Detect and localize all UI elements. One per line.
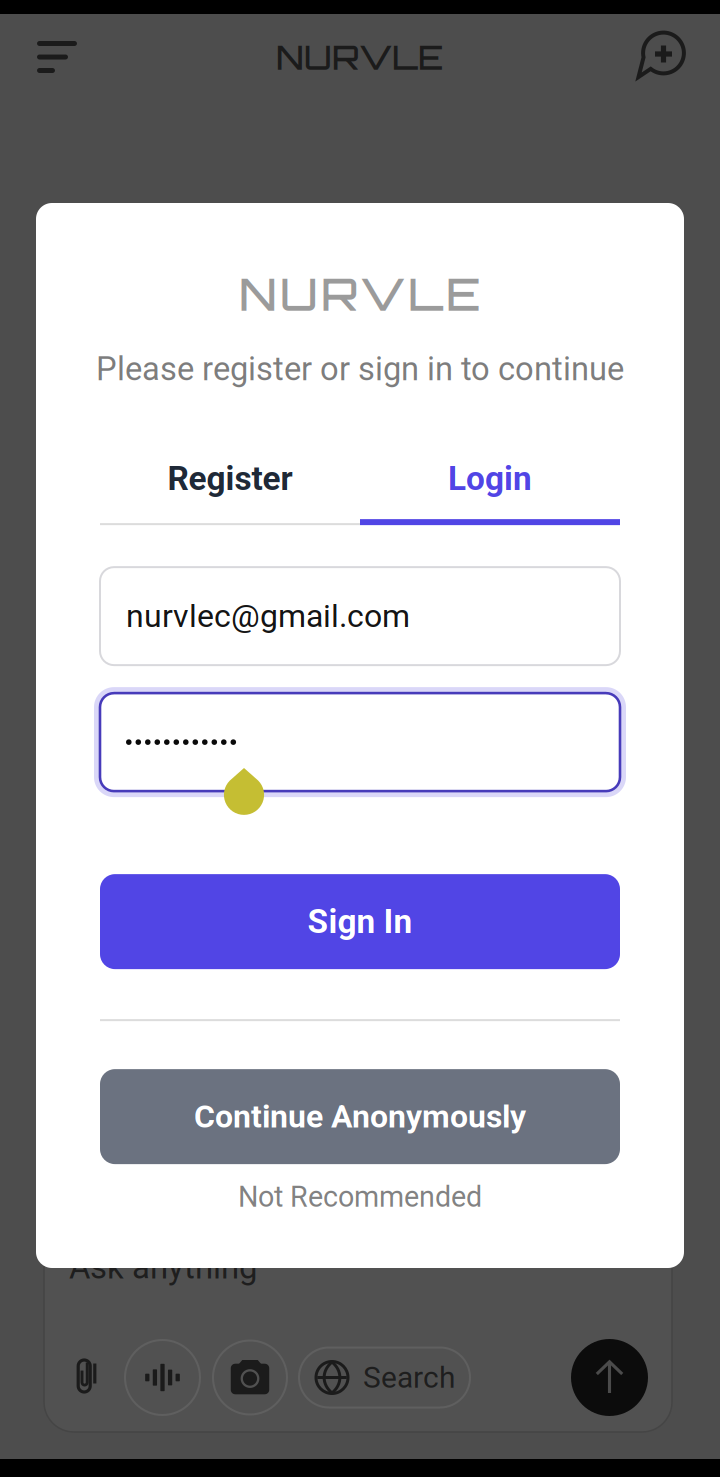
staticText: Search bbox=[363, 1360, 455, 1395]
button[interactable]: Continue Anonymously bbox=[100, 1069, 620, 1164]
button[interactable]: Voice input bbox=[125, 1340, 200, 1415]
button[interactable]: Attach file bbox=[60, 1347, 116, 1407]
button[interactable]: Send bbox=[571, 1339, 648, 1416]
staticText: NURVLE bbox=[276, 36, 444, 78]
staticText: Ask anything bbox=[69, 1248, 257, 1287]
staticText: Continue Anonymously bbox=[194, 1098, 526, 1135]
button[interactable]: Sign In bbox=[100, 874, 620, 969]
staticText: Please register or sign in to continue bbox=[96, 350, 624, 388]
button[interactable]: Camera bbox=[213, 1340, 287, 1414]
staticText: Register bbox=[167, 459, 292, 498]
staticText: Login bbox=[448, 459, 532, 498]
staticText: Sign In bbox=[307, 902, 412, 941]
button[interactable]: Search bbox=[299, 1347, 470, 1407]
staticText: Not Recommended bbox=[238, 1180, 482, 1214]
staticText: NURVLE bbox=[239, 265, 481, 322]
button[interactable]: New chat bbox=[620, 14, 706, 100]
button[interactable]: Menu bbox=[14, 14, 100, 100]
button[interactable]: Login bbox=[360, 459, 620, 525]
button[interactable]: Register bbox=[100, 459, 360, 525]
staticText: nurvlec@gmail.com bbox=[126, 597, 410, 635]
